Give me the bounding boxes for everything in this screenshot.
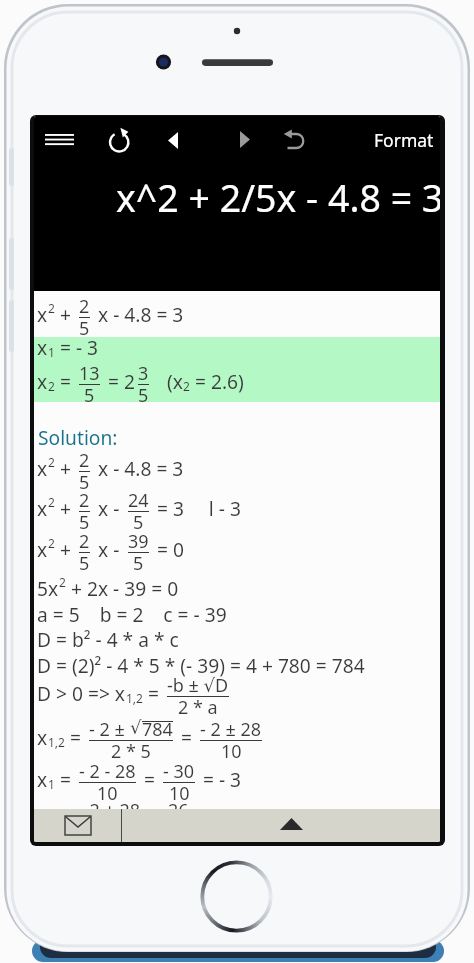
staticText: = bbox=[176, 724, 197, 750]
staticText: 1 bbox=[48, 344, 55, 360]
staticText: x bbox=[37, 495, 48, 521]
staticText: - 2 ± bbox=[89, 717, 130, 742]
staticText: + bbox=[55, 495, 76, 521]
staticText: + bbox=[55, 301, 76, 327]
staticText: = bbox=[144, 805, 165, 831]
staticText: x bbox=[37, 368, 48, 394]
staticText: + 2x - 39 = 0 bbox=[66, 575, 179, 601]
staticText: + bbox=[55, 536, 76, 562]
staticText: D = (2)² - 4 * 5 * (- 39) = 4 + 780 = 78… bbox=[37, 652, 365, 678]
staticText: 2 * 5 bbox=[111, 739, 151, 764]
staticText: = bbox=[55, 766, 76, 792]
staticText: (x bbox=[152, 368, 183, 394]
staticText: 10 bbox=[221, 739, 242, 764]
staticText: 39 bbox=[128, 529, 149, 554]
staticText: 10 bbox=[97, 781, 118, 806]
button[interactable]: Next step bbox=[226, 120, 264, 158]
staticText: 2 * a bbox=[178, 695, 218, 720]
staticText: 3 bbox=[138, 361, 149, 386]
staticText: 2 bbox=[48, 494, 55, 510]
staticText: 5x bbox=[37, 575, 59, 601]
staticText: 2 bbox=[48, 300, 55, 316]
button[interactable]: Send mail bbox=[34, 809, 121, 842]
staticText: x - bbox=[93, 536, 125, 562]
staticText: x bbox=[37, 805, 48, 831]
staticText: = bbox=[139, 766, 160, 792]
button[interactable]: Menu bbox=[40, 120, 78, 158]
staticText: D > 0 => x bbox=[37, 680, 126, 706]
staticText: = 2 bbox=[103, 368, 135, 394]
staticText: 1,2 bbox=[48, 734, 65, 750]
staticText: = 2.6) bbox=[190, 368, 244, 394]
staticText: D = b² - 4 * a * c bbox=[37, 626, 179, 652]
staticText: x bbox=[37, 766, 48, 792]
staticText: 2 bbox=[48, 378, 55, 394]
staticText: 2 bbox=[79, 529, 90, 554]
staticText: x - 4.8 = 3 bbox=[93, 301, 184, 327]
staticText: 2 bbox=[79, 294, 90, 319]
button[interactable]: Undo bbox=[276, 121, 314, 159]
staticText: 2 bbox=[59, 574, 66, 590]
staticText: x bbox=[37, 536, 48, 562]
staticText: = - 3 bbox=[55, 334, 99, 360]
staticText: 24 bbox=[128, 488, 149, 513]
staticText: 1 bbox=[48, 776, 55, 792]
staticText: 5 bbox=[79, 470, 90, 495]
staticText: 2 bbox=[183, 378, 190, 394]
staticText: 2 bbox=[48, 454, 55, 470]
staticText: 5 bbox=[79, 551, 90, 576]
staticText: 26 bbox=[168, 798, 189, 823]
staticText: = bbox=[65, 724, 86, 750]
staticText: = 0 bbox=[152, 536, 184, 562]
staticText: 13 bbox=[79, 361, 100, 386]
staticText: -b ± √D bbox=[167, 673, 229, 698]
staticText: 5 bbox=[79, 316, 90, 341]
staticText: 5 bbox=[133, 510, 144, 535]
staticText: = 3 l - 3 bbox=[152, 495, 241, 521]
staticText: x bbox=[37, 455, 48, 481]
staticText: x^2 + 2/5x - 4.8 = 3 bbox=[116, 172, 440, 223]
staticText: 2 bbox=[79, 488, 90, 513]
staticText: = bbox=[55, 805, 76, 831]
staticText: - 30 bbox=[163, 759, 195, 784]
staticText: 5 bbox=[133, 551, 144, 576]
staticText: 5 bbox=[138, 383, 149, 408]
staticText: + bbox=[55, 455, 76, 481]
staticText: - 2 ± 28 bbox=[200, 717, 262, 742]
staticText: 784 bbox=[142, 717, 173, 742]
staticText: x - 4.8 = 3 bbox=[93, 455, 184, 481]
staticText: = 2.6 bbox=[192, 805, 241, 831]
staticText: 10 bbox=[169, 781, 190, 806]
button[interactable]: Reset bbox=[101, 122, 139, 160]
staticText: √ bbox=[130, 717, 142, 738]
staticText: 1,2 bbox=[126, 690, 143, 706]
button[interactable]: Format bbox=[367, 122, 440, 158]
staticText: 2 bbox=[48, 535, 55, 551]
staticText: = bbox=[143, 680, 164, 706]
button[interactable]: Expand keypad bbox=[122, 809, 440, 842]
staticText: Format bbox=[374, 128, 434, 152]
staticText: x - bbox=[93, 495, 125, 521]
staticText: a = 5 b = 2 c = - 39 bbox=[37, 601, 227, 627]
staticText: x bbox=[37, 334, 48, 360]
staticText: = - 3 bbox=[198, 766, 242, 792]
staticText: Solution: bbox=[38, 424, 118, 450]
staticText: 5 bbox=[84, 383, 95, 408]
staticText: x bbox=[37, 301, 48, 327]
staticText: = bbox=[55, 368, 76, 394]
staticText: - 2 + 28 bbox=[79, 798, 141, 823]
staticText: 5 bbox=[79, 510, 90, 535]
staticText: - 2 - 28 bbox=[79, 759, 136, 784]
staticText: 2 bbox=[79, 448, 90, 473]
button[interactable]: Previous step bbox=[154, 121, 192, 159]
staticText: x bbox=[37, 724, 48, 750]
